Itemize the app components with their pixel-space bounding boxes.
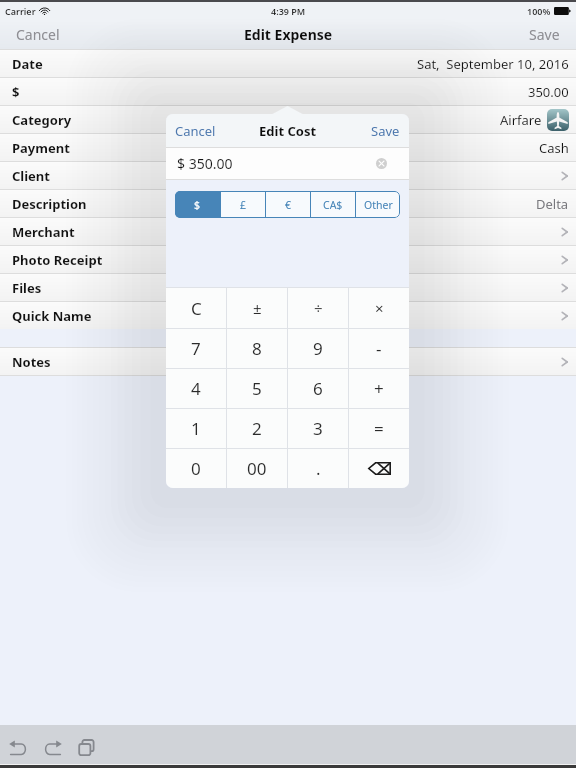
staticText: 4: [191, 377, 201, 400]
button[interactable]: 7: [166, 329, 226, 368]
button[interactable]: Merchant: [0, 217, 576, 245]
button[interactable]: Photo Receipt: [0, 245, 576, 273]
button[interactable]: Category: [0, 105, 576, 133]
staticText: ÷: [314, 298, 323, 318]
staticText: $: [194, 198, 201, 212]
staticText: 3: [313, 417, 323, 440]
staticText: 350.00: [528, 83, 569, 101]
staticText: Files: [12, 279, 42, 297]
staticText: 0: [191, 457, 201, 480]
button[interactable]: Redo: [40, 735, 66, 761]
staticText: 1: [191, 417, 201, 440]
button[interactable]: Quick Name: [0, 301, 576, 329]
button[interactable]: Notes: [0, 347, 576, 375]
staticText: Cancel: [175, 122, 216, 140]
other: Backspace: [368, 462, 391, 475]
button[interactable]: .: [288, 449, 348, 488]
staticText: Cancel: [16, 25, 60, 44]
staticText: Date: [12, 55, 43, 73]
button[interactable]: Clear text: [376, 158, 387, 169]
button[interactable]: ÷: [288, 288, 348, 328]
staticText: Description: [12, 195, 87, 213]
staticText: Delta: [536, 195, 569, 213]
staticText: C: [191, 297, 202, 320]
button[interactable]: €: [266, 191, 310, 218]
button[interactable]: Client: [0, 161, 576, 189]
button[interactable]: Date: [0, 49, 576, 77]
staticText: Photo Receipt: [12, 251, 103, 269]
staticText: 7: [191, 337, 201, 360]
button[interactable]: Save: [362, 114, 409, 147]
staticText: Save: [371, 122, 400, 140]
button[interactable]: Payment: [0, 133, 576, 161]
staticText: 9: [313, 337, 323, 360]
button[interactable]: Cancel: [166, 114, 225, 147]
button[interactable]: Backspace: [349, 449, 409, 488]
staticText: Category: [12, 111, 72, 129]
button[interactable]: 1: [166, 409, 226, 448]
button[interactable]: 6: [288, 369, 348, 408]
button[interactable]: $: [175, 191, 220, 218]
button[interactable]: ±: [227, 288, 287, 328]
staticText: 6: [313, 377, 323, 400]
staticText: 100%: [527, 5, 551, 17]
staticText: =: [374, 417, 384, 440]
staticText: Cash: [539, 139, 569, 157]
button[interactable]: 9: [288, 329, 348, 368]
staticText: Edit Cost: [259, 122, 317, 140]
staticText: ±: [253, 298, 262, 318]
staticText: Merchant: [12, 223, 75, 241]
button[interactable]: Copy: [75, 735, 101, 761]
button[interactable]: $ 350.00: [166, 148, 409, 179]
button[interactable]: Cancel: [0, 20, 76, 49]
button[interactable]: £: [221, 191, 265, 218]
staticText: $: [12, 83, 20, 101]
button[interactable]: Save: [513, 20, 576, 49]
button[interactable]: -: [349, 329, 409, 368]
button[interactable]: Other: [356, 191, 400, 218]
button[interactable]: CA$: [311, 191, 355, 218]
button[interactable]: 00: [227, 449, 287, 488]
button[interactable]: +: [349, 369, 409, 408]
staticText: Quick Name: [12, 307, 92, 325]
button[interactable]: 0: [166, 449, 226, 488]
staticText: £: [240, 198, 247, 212]
staticText: 8: [252, 337, 262, 360]
staticText: Notes: [12, 353, 51, 371]
button[interactable]: 4: [166, 369, 226, 408]
button[interactable]: 5: [227, 369, 287, 408]
other: Airfare category: [547, 109, 569, 131]
staticText: 5: [252, 377, 262, 400]
staticText: Carrier: [5, 5, 36, 17]
staticText: €: [285, 198, 292, 212]
staticText: Save: [529, 25, 560, 44]
staticText: 4:39 PM: [271, 5, 306, 17]
staticText: Client: [12, 167, 50, 185]
button[interactable]: ×: [349, 288, 409, 328]
button[interactable]: 8: [227, 329, 287, 368]
button[interactable]: $: [0, 77, 576, 105]
staticText: -: [376, 337, 382, 360]
button[interactable]: 3: [288, 409, 348, 448]
staticText: 00: [247, 457, 267, 480]
staticText: +: [374, 377, 384, 400]
button[interactable]: Description: [0, 189, 576, 217]
button[interactable]: C: [166, 288, 226, 328]
button[interactable]: =: [349, 409, 409, 448]
staticText: Payment: [12, 139, 70, 157]
button[interactable]: Undo: [5, 735, 31, 761]
staticText: Sat, September 10, 2016: [417, 55, 569, 73]
button[interactable]: Files: [0, 273, 576, 301]
staticText: Edit Expense: [244, 25, 333, 44]
staticText: Airfare: [500, 111, 542, 129]
staticText: Other: [364, 198, 393, 212]
staticText: $ 350.00: [177, 154, 233, 173]
staticText: .: [316, 457, 321, 480]
button[interactable]: 2: [227, 409, 287, 448]
staticText: ×: [375, 298, 384, 318]
staticText: CA$: [323, 198, 343, 212]
staticText: 2: [252, 417, 262, 440]
